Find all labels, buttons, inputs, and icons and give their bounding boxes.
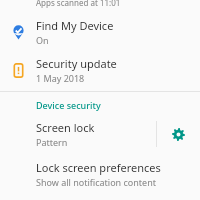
button[interactable]: Lock screen preferences [0,154,200,194]
button[interactable]: Apps scanned at 11:01 [0,0,200,13]
staticText: Find My Device [36,18,114,33]
staticText: Apps scanned at 11:01 [36,0,121,8]
staticText: Security update [36,56,117,71]
staticText: Pattern [36,136,68,148]
staticText: On [36,34,49,46]
staticText: Lock screen preferences [36,160,161,175]
staticText: 1 May 2018 [36,72,85,84]
button[interactable]: Screen lock [0,120,156,148]
staticText: Show all notification content [36,176,156,188]
button[interactable]: Find My Device [0,13,200,51]
button[interactable]: Security update [0,51,200,89]
staticText: Device security [36,99,101,111]
staticText: Screen lock [36,120,95,135]
button[interactable]: Screen lock settings [157,114,200,154]
